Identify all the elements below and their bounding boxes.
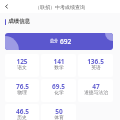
staticText: 历史	[17, 114, 27, 120]
staticText: 69.5	[52, 82, 65, 91]
button[interactable]: 76.5	[5, 79, 39, 102]
staticText: （联招）中考成绩查询	[35, 4, 85, 10]
button[interactable]: 46.5	[5, 104, 39, 120]
button[interactable]: 50	[41, 104, 76, 120]
staticText: 数学	[54, 64, 64, 70]
button[interactable]: 总分	[5, 33, 113, 50]
button[interactable]: 141	[41, 54, 76, 77]
staticText: 76.5	[16, 82, 29, 91]
staticText: 125	[16, 57, 28, 66]
button[interactable]: Back	[0, 0, 13, 13]
button[interactable]: 125	[5, 54, 39, 77]
staticText: 50	[55, 107, 63, 116]
staticText: 成绩信息	[8, 18, 30, 25]
staticText: 692	[60, 36, 72, 47]
staticText: 46.5	[16, 107, 29, 116]
staticText: 道德与法治	[84, 89, 108, 95]
button[interactable]: 69.5	[41, 79, 76, 102]
staticText: 141	[53, 57, 65, 66]
button[interactable]: 47	[78, 79, 113, 102]
staticText: 总分	[50, 38, 58, 43]
staticText: 物理	[17, 89, 27, 95]
staticText: 136.5	[87, 57, 104, 66]
staticText: 体育	[54, 114, 64, 120]
staticText: 化学	[54, 89, 64, 95]
button[interactable]: 136.5	[78, 54, 113, 77]
staticText: 英语	[91, 64, 101, 70]
staticText: 语文	[17, 64, 27, 70]
staticText: 47	[92, 82, 100, 91]
